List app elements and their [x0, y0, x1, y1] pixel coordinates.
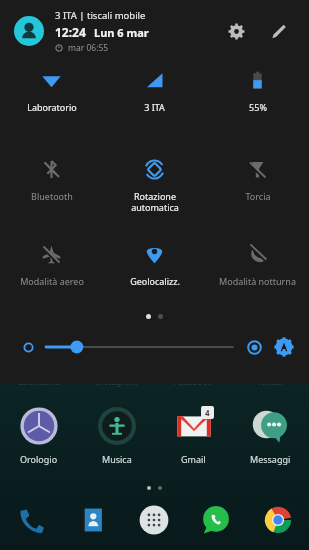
- button[interactable]: Musica: [78, 404, 155, 478]
- staticText: 55%: [249, 101, 267, 113]
- staticText: Modalità notturna: [219, 275, 296, 287]
- staticText: Torcia: [245, 190, 271, 202]
- staticText: 12:24: [55, 24, 86, 40]
- button[interactable]: Modalità notturna: [206, 240, 309, 308]
- staticText: Facebook: [174, 376, 213, 388]
- button[interactable]: Modalità aereo: [0, 240, 103, 308]
- staticText: mar 06:55: [68, 42, 109, 54]
- staticText: Bluetooth: [31, 190, 73, 202]
- button[interactable]: Chrome: [247, 497, 309, 543]
- button[interactable]: 4: [155, 404, 232, 478]
- staticText: Rotazione automatica: [131, 190, 179, 213]
- staticText: Musica: [102, 453, 132, 465]
- staticText: Messaggi: [250, 453, 291, 465]
- staticText: Geolocalizz.: [130, 275, 180, 287]
- button[interactable]: Rotazione automatica: [103, 155, 206, 223]
- staticText: 4: [205, 407, 210, 418]
- staticText: 3 ITA | tiscali mobile: [55, 9, 146, 22]
- button[interactable]: Impostazioni: [219, 14, 253, 48]
- button[interactable]: Bluetooth: [0, 155, 103, 223]
- staticText: Laboratorio: [27, 101, 77, 113]
- staticText: Lun 6 mar: [94, 25, 149, 40]
- staticText: Gmail: [181, 453, 206, 465]
- button[interactable]: Messaggi: [232, 404, 309, 478]
- staticText: Instagram: [96, 376, 138, 388]
- button[interactable]: Utente: [14, 16, 44, 46]
- staticText: 3 ITA: [144, 101, 165, 113]
- button[interactable]: Orologio: [0, 404, 78, 478]
- button[interactable]: Geolocalizz.: [103, 240, 206, 308]
- button[interactable]: 55%: [206, 66, 309, 134]
- button[interactable]: Tutte le app: [123, 497, 185, 543]
- button[interactable]: Luminosità automatica: [273, 336, 295, 358]
- button[interactable]: Modifica: [261, 14, 295, 48]
- button[interactable]: Telefono: [0, 497, 61, 543]
- button[interactable]: Luminosità massima: [243, 336, 265, 358]
- button[interactable]: WhatsApp: [185, 497, 247, 543]
- button[interactable]: 3 ITA: [103, 66, 206, 134]
- button[interactable]: Torcia: [206, 155, 309, 223]
- button[interactable]: Luminosità minima: [18, 337, 38, 357]
- button[interactable]: Contatti: [61, 497, 123, 543]
- staticText: Orologio: [20, 453, 58, 465]
- staticText: Twitter: [257, 376, 285, 388]
- staticText: Calendario: [17, 376, 61, 388]
- staticText: Modalità aereo: [20, 275, 84, 287]
- button[interactable]: Laboratorio: [0, 66, 103, 134]
- button[interactable]: [46, 335, 233, 359]
